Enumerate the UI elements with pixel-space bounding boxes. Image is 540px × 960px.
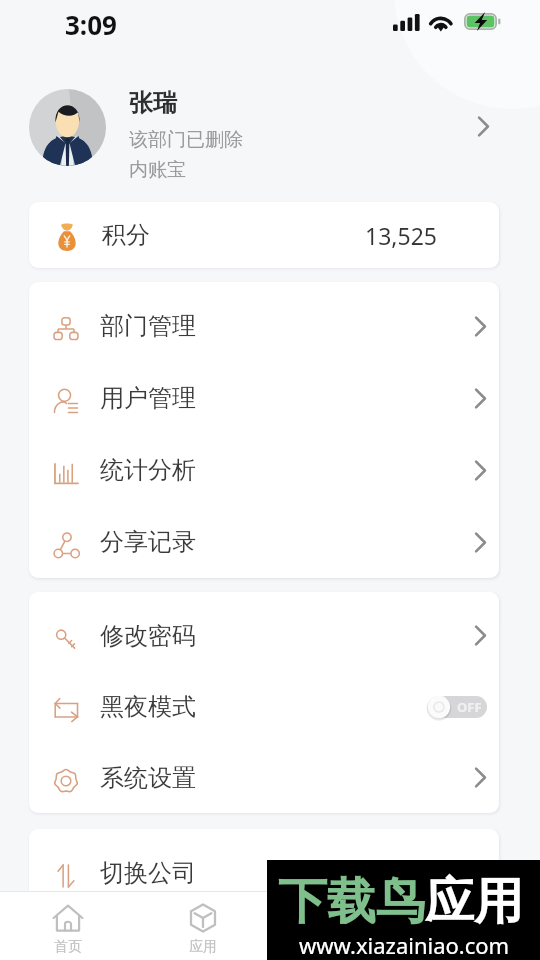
staticText: 消息: [324, 938, 352, 956]
staticText: 下载鸟: [278, 871, 425, 933]
staticText: 黑夜模式: [100, 692, 196, 722]
staticText: 应用: [189, 938, 217, 956]
staticText: 部门管理: [100, 311, 196, 341]
staticText: 首页: [54, 938, 82, 956]
button[interactable]: 张瑞: [0, 58, 540, 196]
staticText: 内账宝: [129, 158, 186, 182]
staticText: 分享记录: [100, 527, 196, 557]
button[interactable]: 统计分析: [29, 434, 499, 506]
button[interactable]: 切换公司: [29, 837, 499, 909]
staticText: 积分: [102, 220, 150, 250]
button[interactable]: 用户管理: [29, 362, 499, 434]
staticText: 我的: [459, 938, 487, 956]
button[interactable]: 我的: [405, 892, 540, 960]
staticText: 系统设置: [100, 763, 196, 793]
staticText: 13,525: [365, 220, 437, 251]
button[interactable]: Dark mode off: [426, 694, 487, 720]
button[interactable]: 积分: [29, 202, 499, 268]
staticText: 用户管理: [100, 383, 196, 413]
button[interactable]: 分享记录: [29, 506, 499, 578]
staticText: 修改密码: [100, 621, 196, 651]
staticText: OFF: [457, 698, 482, 716]
button[interactable]: 修改密码: [29, 600, 499, 671]
staticText: 3:09: [65, 7, 117, 42]
staticText: 该部门已删除: [129, 128, 243, 152]
staticText: 张瑞: [129, 88, 177, 118]
button[interactable]: 首页: [0, 892, 135, 960]
staticText: 应用: [425, 871, 523, 933]
staticText: www.xiazainiao.com: [299, 930, 510, 960]
button[interactable]: 应用: [135, 892, 270, 960]
staticText: 统计分析: [100, 455, 196, 485]
button[interactable]: 部门管理: [29, 290, 499, 362]
staticText: 切换公司: [100, 858, 196, 888]
button[interactable]: 系统设置: [29, 742, 499, 813]
button[interactable]: 黑夜模式: [29, 671, 499, 742]
button[interactable]: 消息: [270, 892, 405, 960]
other: Open profile: [477, 116, 490, 137]
